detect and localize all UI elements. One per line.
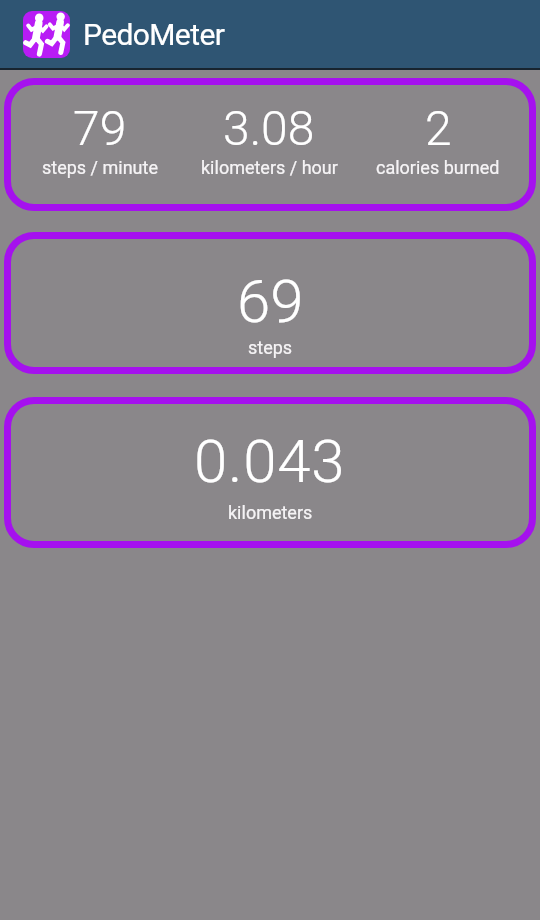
staticText: 2 (425, 100, 452, 156)
staticText: PedoMeter (83, 17, 225, 52)
staticText: kilometers (228, 502, 313, 523)
button[interactable]: 79 (4, 78, 536, 211)
staticText: calories burned (376, 157, 500, 178)
staticText: 79 (73, 100, 127, 156)
button[interactable]: 0.043 (4, 397, 536, 548)
button[interactable] (23, 11, 70, 58)
staticText: 0.043 (194, 426, 346, 496)
button[interactable]: 69 (4, 232, 536, 374)
staticText: steps (248, 337, 293, 358)
staticText: 69 (237, 266, 304, 336)
staticText: 3.08 (223, 100, 315, 156)
staticText: steps / minute (42, 157, 158, 178)
staticText: kilometers / hour (201, 157, 338, 178)
